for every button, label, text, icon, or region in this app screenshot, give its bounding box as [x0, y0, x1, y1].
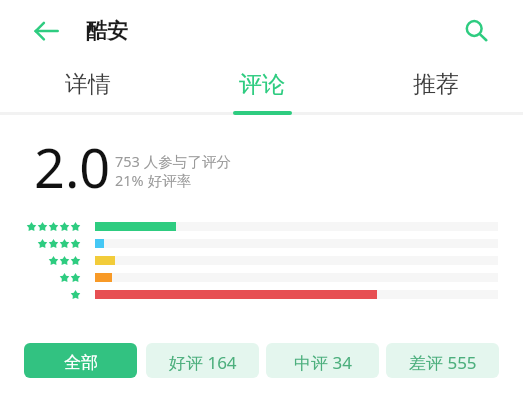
- staticText: 推荐: [413, 70, 459, 99]
- button[interactable]: 中评 34: [266, 343, 379, 378]
- staticText: 差评 555: [409, 351, 477, 374]
- staticText: 酷安: [86, 18, 128, 44]
- staticText: 好评 164: [169, 351, 237, 374]
- button[interactable]: 1 star ratings: [0, 286, 523, 303]
- button[interactable]: 差评 555: [386, 343, 499, 378]
- button[interactable]: Back: [26, 15, 59, 48]
- button[interactable]: Search: [460, 15, 493, 48]
- button[interactable]: 好评 164: [146, 343, 259, 378]
- button[interactable]: 全部: [24, 343, 137, 378]
- button[interactable]: 推荐: [349, 63, 523, 115]
- staticText: 中评 34: [294, 351, 352, 374]
- button[interactable]: 详情: [0, 63, 175, 115]
- staticText: 详情: [65, 70, 111, 99]
- button[interactable]: 5 star ratings: [0, 218, 523, 235]
- staticText: 评论: [239, 70, 285, 99]
- button[interactable]: 评论: [175, 63, 349, 115]
- button[interactable]: 2 star ratings: [0, 269, 523, 286]
- button[interactable]: 3 star ratings: [0, 252, 523, 269]
- button[interactable]: 4 star ratings: [0, 235, 523, 252]
- staticText: 全部: [64, 352, 98, 373]
- staticText: 2.0: [34, 130, 111, 204]
- staticText: 21% 好评率: [115, 170, 191, 190]
- staticText: 753 人参与了评分: [115, 151, 231, 171]
